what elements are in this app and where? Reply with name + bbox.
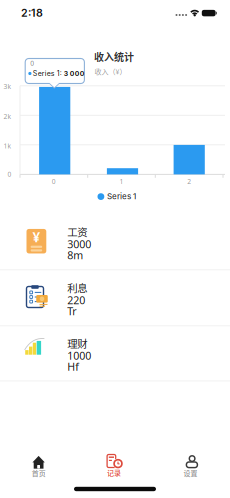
button[interactable]: 设置 (153, 448, 230, 490)
button[interactable]: 记录 (77, 448, 153, 490)
staticText: 1k (4, 142, 12, 150)
staticText: 理财 (67, 336, 87, 351)
staticText: 2:18 (21, 6, 43, 19)
staticText: 220 (67, 293, 85, 307)
staticText: 1 (119, 177, 123, 186)
button[interactable]: 理财 (0, 325, 230, 381)
button[interactable]: ¥ (0, 214, 230, 270)
button[interactable]: 首页 (0, 448, 77, 490)
button[interactable]: 利息 (0, 270, 230, 326)
staticText: 设置 (183, 468, 197, 478)
staticText: 0 (30, 59, 34, 68)
staticText: 记录 (107, 468, 121, 478)
staticText: 0 (8, 170, 12, 179)
staticText: Hf (67, 359, 79, 374)
staticText: 8m (67, 248, 83, 262)
staticText: 利息 (67, 280, 87, 295)
staticText: ¥ (32, 228, 40, 246)
staticText: 收入（¥） (95, 66, 127, 76)
staticText: 3k (4, 82, 12, 91)
staticText: 收入统计 (94, 49, 134, 64)
staticText: Series 1: 3 000 (33, 69, 85, 77)
staticText: Tr (67, 304, 76, 318)
staticText: 首页 (32, 468, 46, 478)
staticText: 3000 (67, 237, 91, 251)
staticText: 2 (187, 177, 191, 186)
staticText: Series 1 (107, 192, 136, 201)
staticText: 1000 (67, 348, 91, 363)
staticText: 0 (52, 177, 56, 186)
staticText: 2k (4, 112, 12, 121)
staticText: 工资 (67, 224, 87, 239)
